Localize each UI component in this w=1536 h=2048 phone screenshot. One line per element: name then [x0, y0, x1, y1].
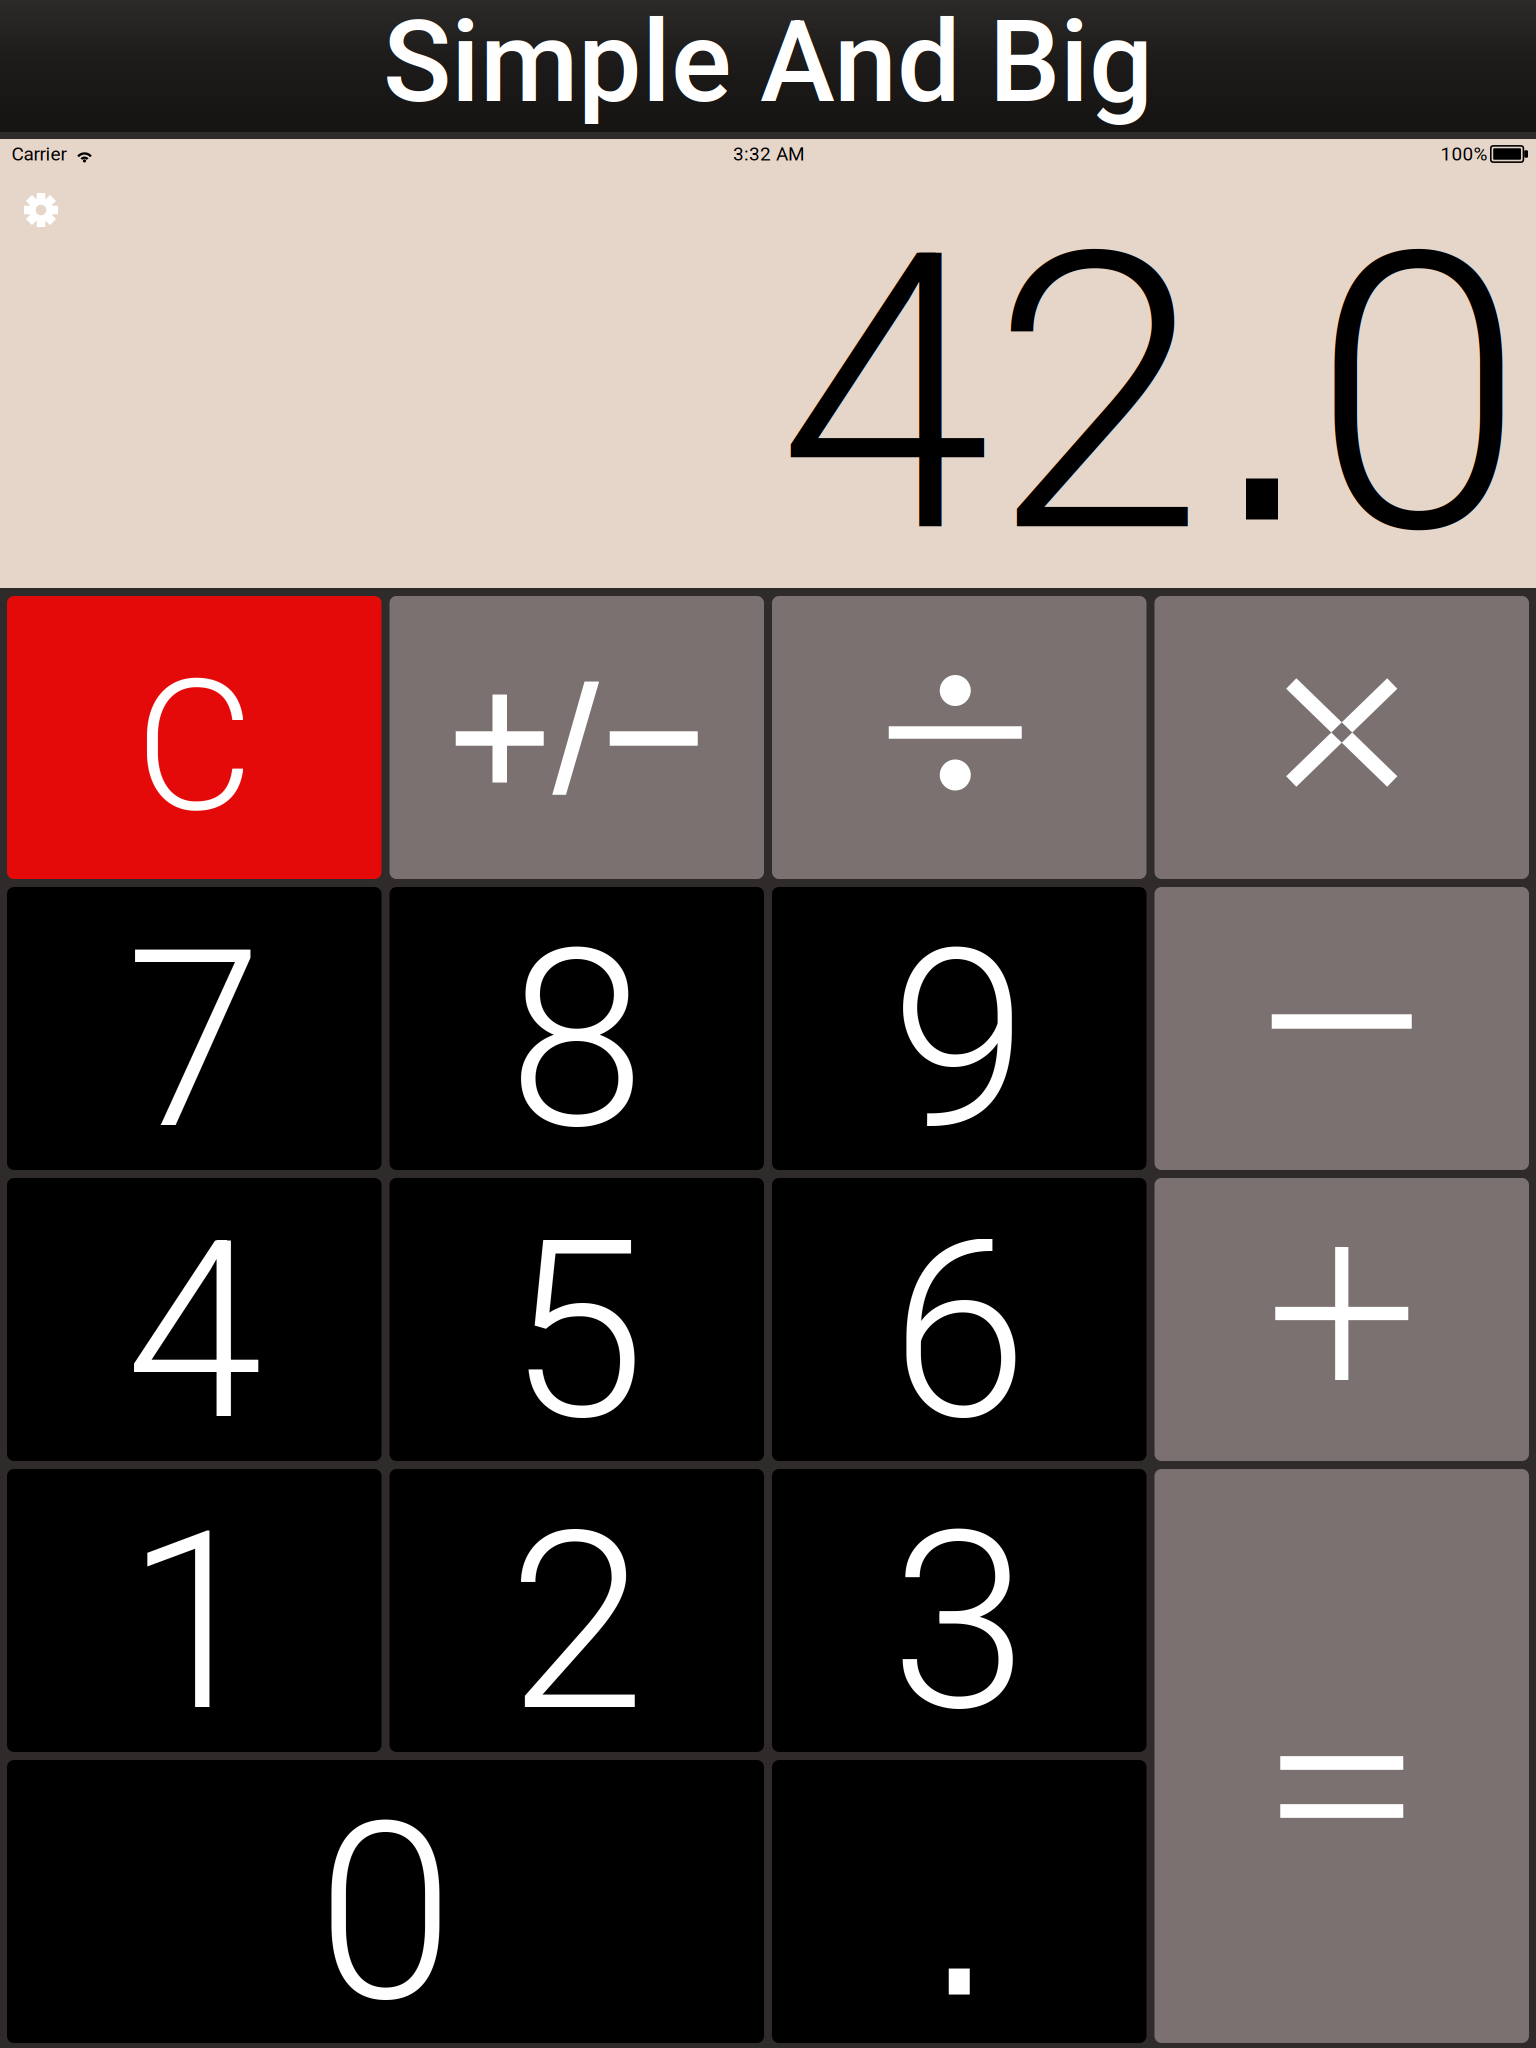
button[interactable]: 8 [389, 887, 764, 1170]
button[interactable]: Settings [5, 179, 77, 241]
button[interactable]: 4 [7, 1178, 381, 1461]
button[interactable]: Minus [1154, 887, 1529, 1170]
staticText: 2 [508, 1478, 645, 1767]
staticText: 3 [891, 1478, 1028, 1767]
staticText: Carrier [11, 143, 66, 165]
staticText: 3:32 AM [733, 143, 805, 165]
staticText: C [135, 640, 253, 853]
button[interactable]: 6 [772, 1178, 1146, 1461]
button[interactable]: C [7, 596, 381, 879]
button[interactable]: 1 [7, 1469, 381, 1752]
button[interactable]: Decimal point [772, 1760, 1146, 2043]
staticText: 42 [778, 170, 1204, 620]
staticText: 5 [508, 1187, 645, 1476]
staticText: 9 [891, 896, 1028, 1185]
button[interactable]: 7 [7, 887, 381, 1170]
button[interactable]: 5 [389, 1178, 764, 1461]
button[interactable]: Multiply [1154, 596, 1529, 879]
button[interactable]: Plus [1154, 1178, 1529, 1461]
button[interactable]: Plus or minus [389, 596, 764, 879]
staticText: 4 [126, 1187, 263, 1476]
button[interactable]: 3 [772, 1469, 1146, 1752]
staticText: 100% [1440, 143, 1487, 165]
button[interactable]: 0 [7, 1760, 764, 2043]
staticText: 0 [1312, 170, 1525, 620]
button[interactable]: Equals [1154, 1469, 1529, 2043]
staticText: 8 [508, 896, 645, 1185]
button[interactable]: 9 [772, 887, 1146, 1170]
staticText: 0 [317, 1769, 454, 2048]
button[interactable]: Divide [772, 596, 1146, 879]
staticText: 7 [126, 896, 263, 1185]
staticText: 6 [891, 1187, 1028, 1476]
button[interactable]: 2 [389, 1469, 764, 1752]
staticText: 1 [126, 1478, 263, 1767]
staticText: Simple And Big [383, 0, 1153, 129]
